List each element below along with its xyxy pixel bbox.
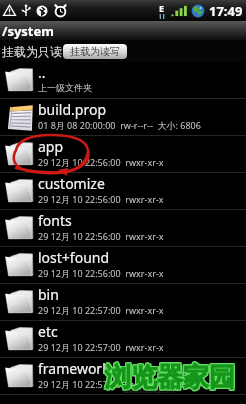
staticText: 浏览器家园 xyxy=(104,361,234,394)
staticText: 挂载为只读 xyxy=(2,44,62,59)
staticText: 29 12月 10 22:57:00 rwxr-xr-x xyxy=(38,304,164,316)
staticText: 01 8月 08 20:00:00 rw-r--r-- 大小: 6806 xyxy=(38,119,201,131)
staticText: bin xyxy=(38,285,59,304)
staticText: 29 12月 10 22:56:00 rwxr-xr-x xyxy=(38,193,164,205)
staticText: 浏览器家园 xyxy=(105,362,235,395)
staticText: app xyxy=(38,137,64,156)
staticText: 浏览器家园 xyxy=(105,360,235,393)
button[interactable]: lost+found xyxy=(0,247,246,283)
staticText: 29 12月 10 22:56:00 rwxr-xr-x xyxy=(38,267,164,279)
button[interactable]: 挂载为读写 xyxy=(63,44,127,59)
staticText: 浏览器家园 xyxy=(106,361,236,394)
staticText: E xyxy=(159,2,165,14)
staticText: 浏览器家园 xyxy=(105,361,235,394)
staticText: 挂载为读写 xyxy=(70,45,120,58)
staticText: 29 12月 10 22:56:00 rwxr-xr-x xyxy=(38,156,164,168)
button[interactable]: etc xyxy=(0,321,246,357)
button[interactable]: fonts xyxy=(0,210,246,246)
staticText: build.prop xyxy=(38,100,107,119)
button[interactable]: bin xyxy=(0,284,246,320)
staticText: 浏览器家园 xyxy=(106,362,236,395)
staticText: 浏览器家园 xyxy=(104,360,234,393)
staticText: 29 12月 10 22:56:00 rwxr-xr-x xyxy=(38,230,164,242)
button[interactable]: customize xyxy=(0,173,246,209)
button[interactable]: build.prop xyxy=(0,99,246,135)
staticText: lost+found xyxy=(38,248,110,267)
button[interactable]: 挂载为只读 xyxy=(1,44,63,59)
staticText: 浏览器家园 xyxy=(106,360,236,393)
staticText: /system xyxy=(2,22,54,40)
staticText: 29 12月 10 22:57:00 rwxr-xr-x xyxy=(38,341,164,353)
staticText: etc xyxy=(38,322,58,341)
staticText: www.liulanqi.com xyxy=(124,387,174,395)
staticText: fonts xyxy=(38,211,72,230)
staticText: customize xyxy=(38,174,105,193)
staticText: 浏览器家园 xyxy=(104,362,234,395)
button[interactable]: framework xyxy=(0,358,246,394)
staticText: 29 12月 10 22:57:00 rwxr-xr-x xyxy=(38,378,164,390)
staticText: 17:49 xyxy=(209,2,243,20)
staticText: 浏览器家园 xyxy=(105,361,235,394)
staticText: framework xyxy=(38,359,110,378)
button[interactable]: app xyxy=(0,136,246,172)
staticText: .. xyxy=(38,63,46,82)
button[interactable]: .. xyxy=(0,62,246,98)
staticText: 上一级文件夹 xyxy=(38,82,92,93)
